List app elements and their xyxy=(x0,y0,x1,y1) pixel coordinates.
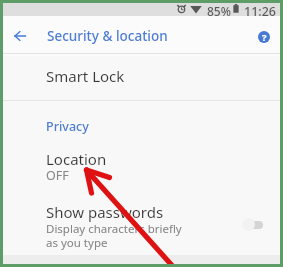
button[interactable]: Show passwords xyxy=(242,218,263,231)
staticText: Location xyxy=(46,149,107,169)
staticText: Security & location xyxy=(47,27,168,45)
staticText: 85% xyxy=(207,3,231,17)
staticText: OFF xyxy=(46,167,69,184)
staticText: ? xyxy=(262,31,267,43)
button[interactable]: Show passwords xyxy=(3,194,280,258)
staticText: Show passwords xyxy=(46,202,164,222)
button[interactable]: Smart Lock xyxy=(3,53,280,100)
button[interactable]: Navigate up xyxy=(3,17,39,56)
staticText: 11:26 xyxy=(244,3,277,17)
staticText: Display characters briefly as you type xyxy=(46,221,182,250)
staticText: Privacy xyxy=(46,118,89,135)
button[interactable]: Help xyxy=(249,17,279,56)
button[interactable]: Location xyxy=(3,140,280,190)
staticText: Smart Lock xyxy=(46,66,125,86)
